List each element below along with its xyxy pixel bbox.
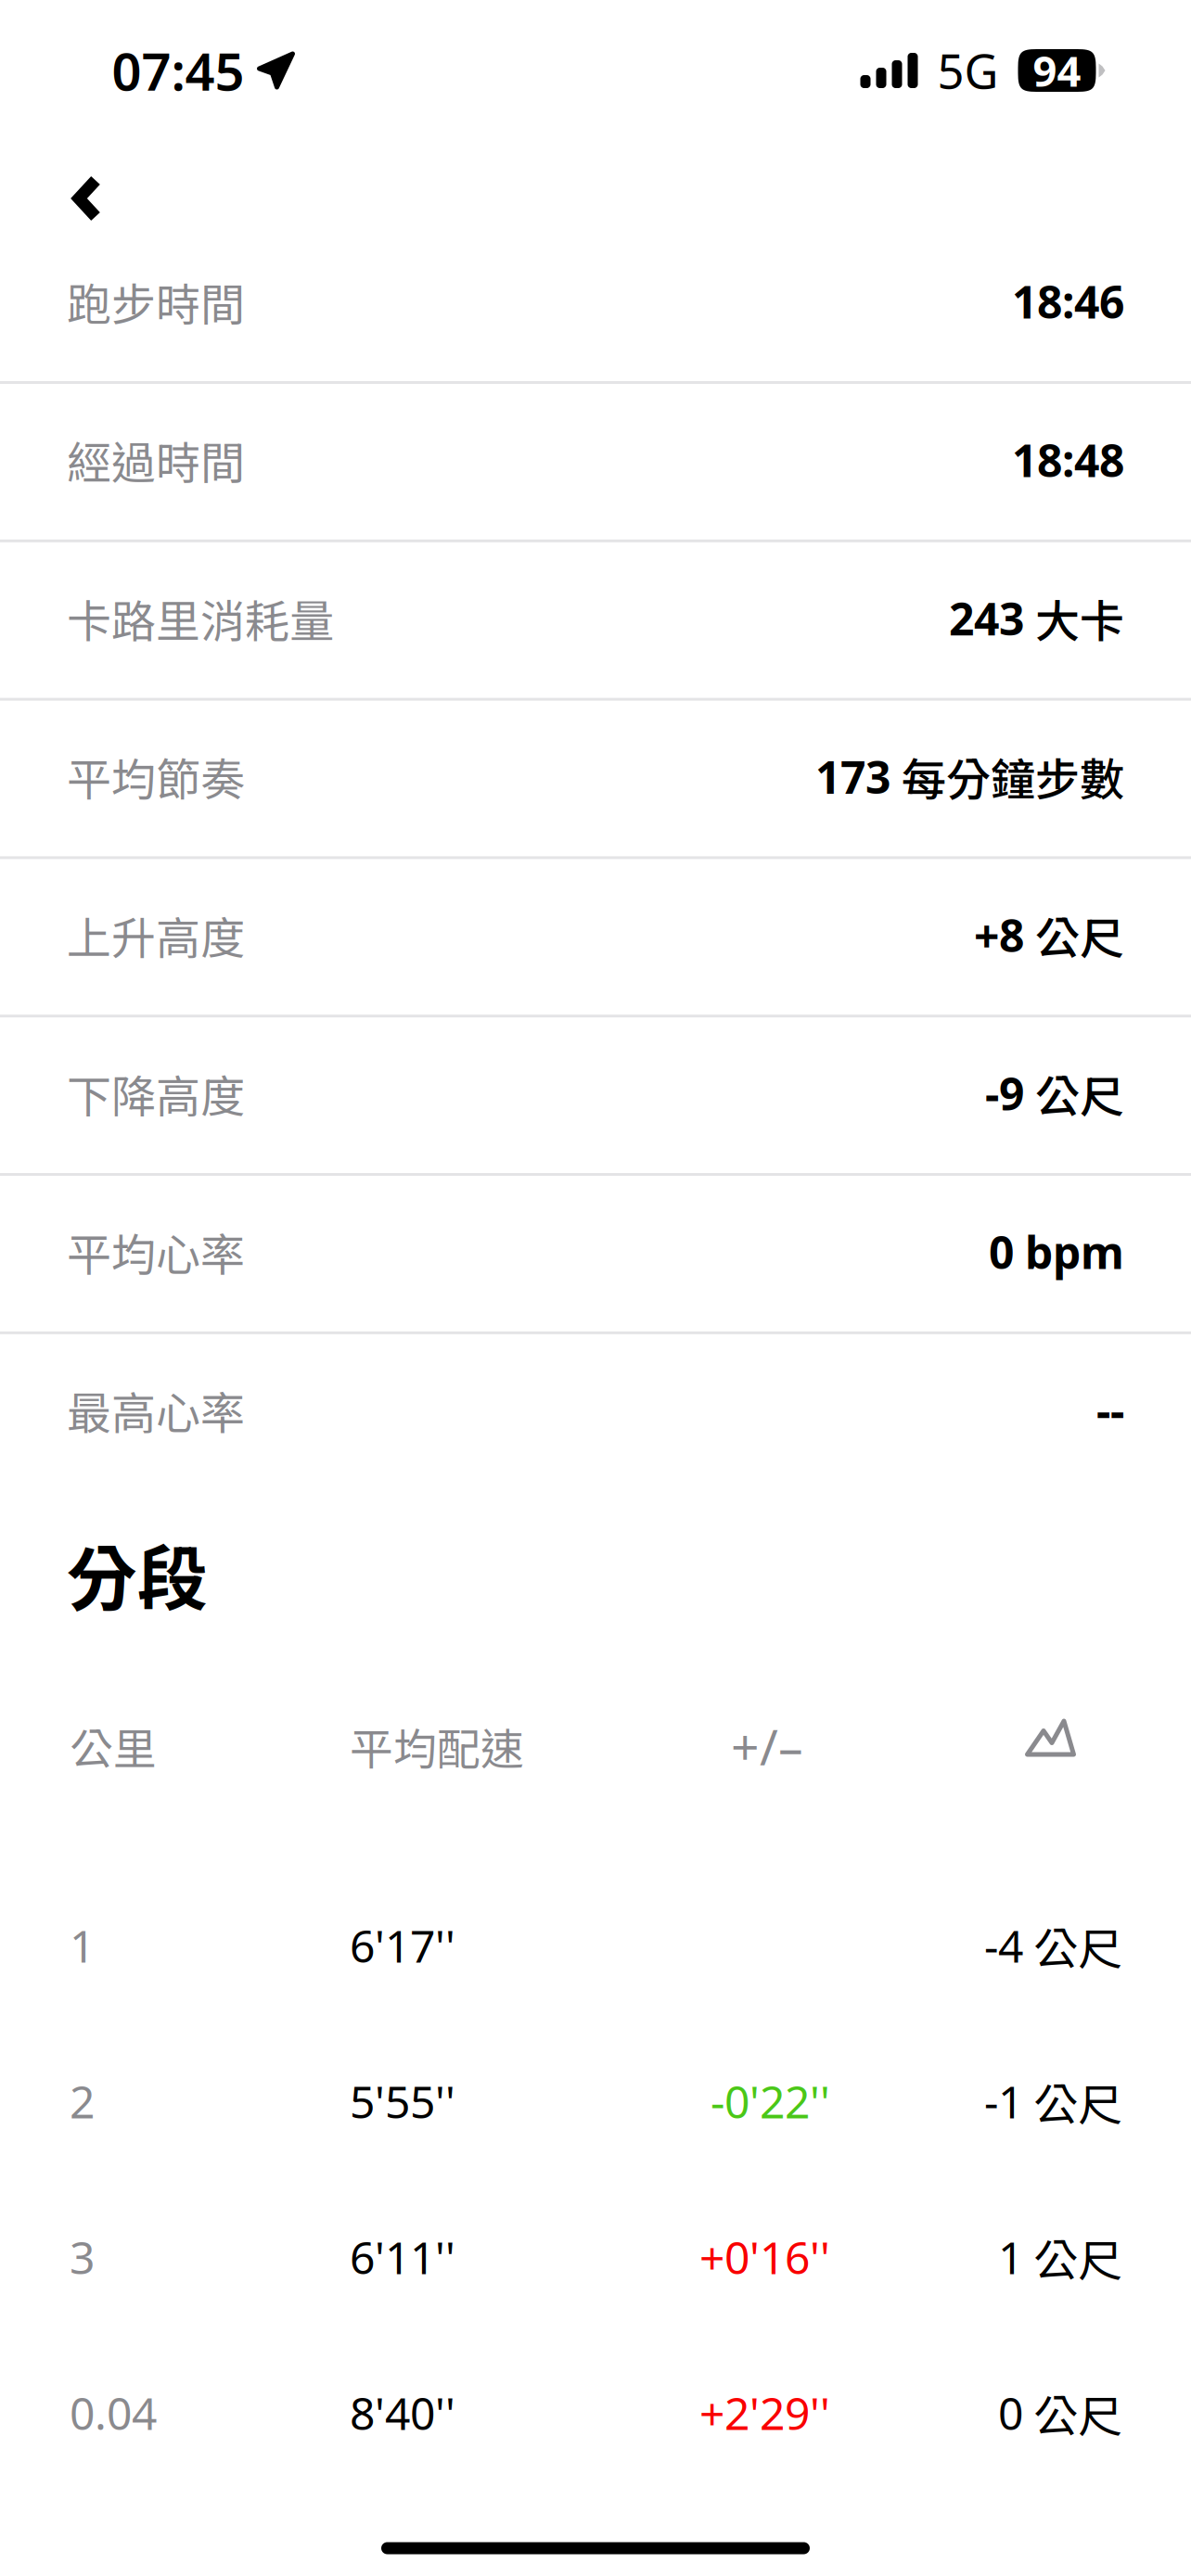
staticText: 公尺 bbox=[1023, 2069, 1122, 2133]
staticText: -9 bbox=[985, 1064, 1035, 1123]
staticText: 大卡 bbox=[1035, 586, 1124, 650]
staticText: 每分鐘步數 bbox=[902, 744, 1124, 809]
staticText: 0.04 bbox=[70, 2383, 157, 2442]
staticText: 0 bbox=[998, 2383, 1023, 2442]
staticText: 07:45 bbox=[112, 36, 244, 105]
staticText: +/– bbox=[731, 1713, 803, 1779]
staticText: 平均配速 bbox=[350, 1715, 524, 1777]
staticText: 公尺 bbox=[1023, 1913, 1122, 1978]
staticText: +2'29'' bbox=[699, 2383, 830, 2442]
staticText: 經過時間 bbox=[67, 427, 245, 492]
staticText: -- bbox=[1096, 1380, 1124, 1440]
staticText: 平均心率 bbox=[67, 1219, 245, 1284]
staticText: 18:46 bbox=[1012, 272, 1124, 331]
staticText: 最高心率 bbox=[67, 1378, 245, 1442]
staticText: +8 bbox=[974, 905, 1035, 964]
staticText: 公尺 bbox=[1035, 903, 1124, 967]
staticText: 2 bbox=[70, 2072, 95, 2131]
staticText: 0 bpm bbox=[989, 1222, 1124, 1281]
staticText: -0'22'' bbox=[711, 2072, 830, 2131]
staticText: 173 bbox=[815, 747, 902, 806]
staticText: 卡路里消耗量 bbox=[67, 586, 334, 650]
staticText: 18:48 bbox=[1012, 430, 1124, 489]
staticText: 6'11'' bbox=[350, 2227, 455, 2287]
staticText: 8'40'' bbox=[350, 2383, 455, 2442]
staticText: 平均節奏 bbox=[67, 744, 245, 809]
staticText: 公尺 bbox=[1023, 2381, 1122, 2445]
staticText: 分段 bbox=[67, 1523, 208, 1625]
staticText: 跑步時間 bbox=[67, 269, 245, 334]
button[interactable]: Back bbox=[36, 147, 138, 249]
staticText: 上升高度 bbox=[67, 903, 245, 967]
staticText: 下降高度 bbox=[67, 1061, 245, 1125]
staticText: 6'17'' bbox=[350, 1916, 455, 1975]
staticText: 94 bbox=[1033, 43, 1081, 98]
staticText: 1 bbox=[70, 1916, 95, 1975]
staticText: 公尺 bbox=[1023, 2225, 1122, 2289]
staticText: 公里 bbox=[70, 1715, 157, 1777]
staticText: 5'55'' bbox=[350, 2072, 455, 2131]
staticText: 243 bbox=[949, 589, 1035, 648]
staticText: +0'16'' bbox=[699, 2227, 830, 2287]
staticText: 公尺 bbox=[1035, 1061, 1124, 1125]
staticText: -1 bbox=[984, 2072, 1023, 2131]
staticText: 1 bbox=[998, 2227, 1023, 2287]
staticText: -4 bbox=[984, 1916, 1023, 1975]
staticText: 5G bbox=[937, 39, 999, 102]
staticText: 3 bbox=[70, 2227, 95, 2287]
